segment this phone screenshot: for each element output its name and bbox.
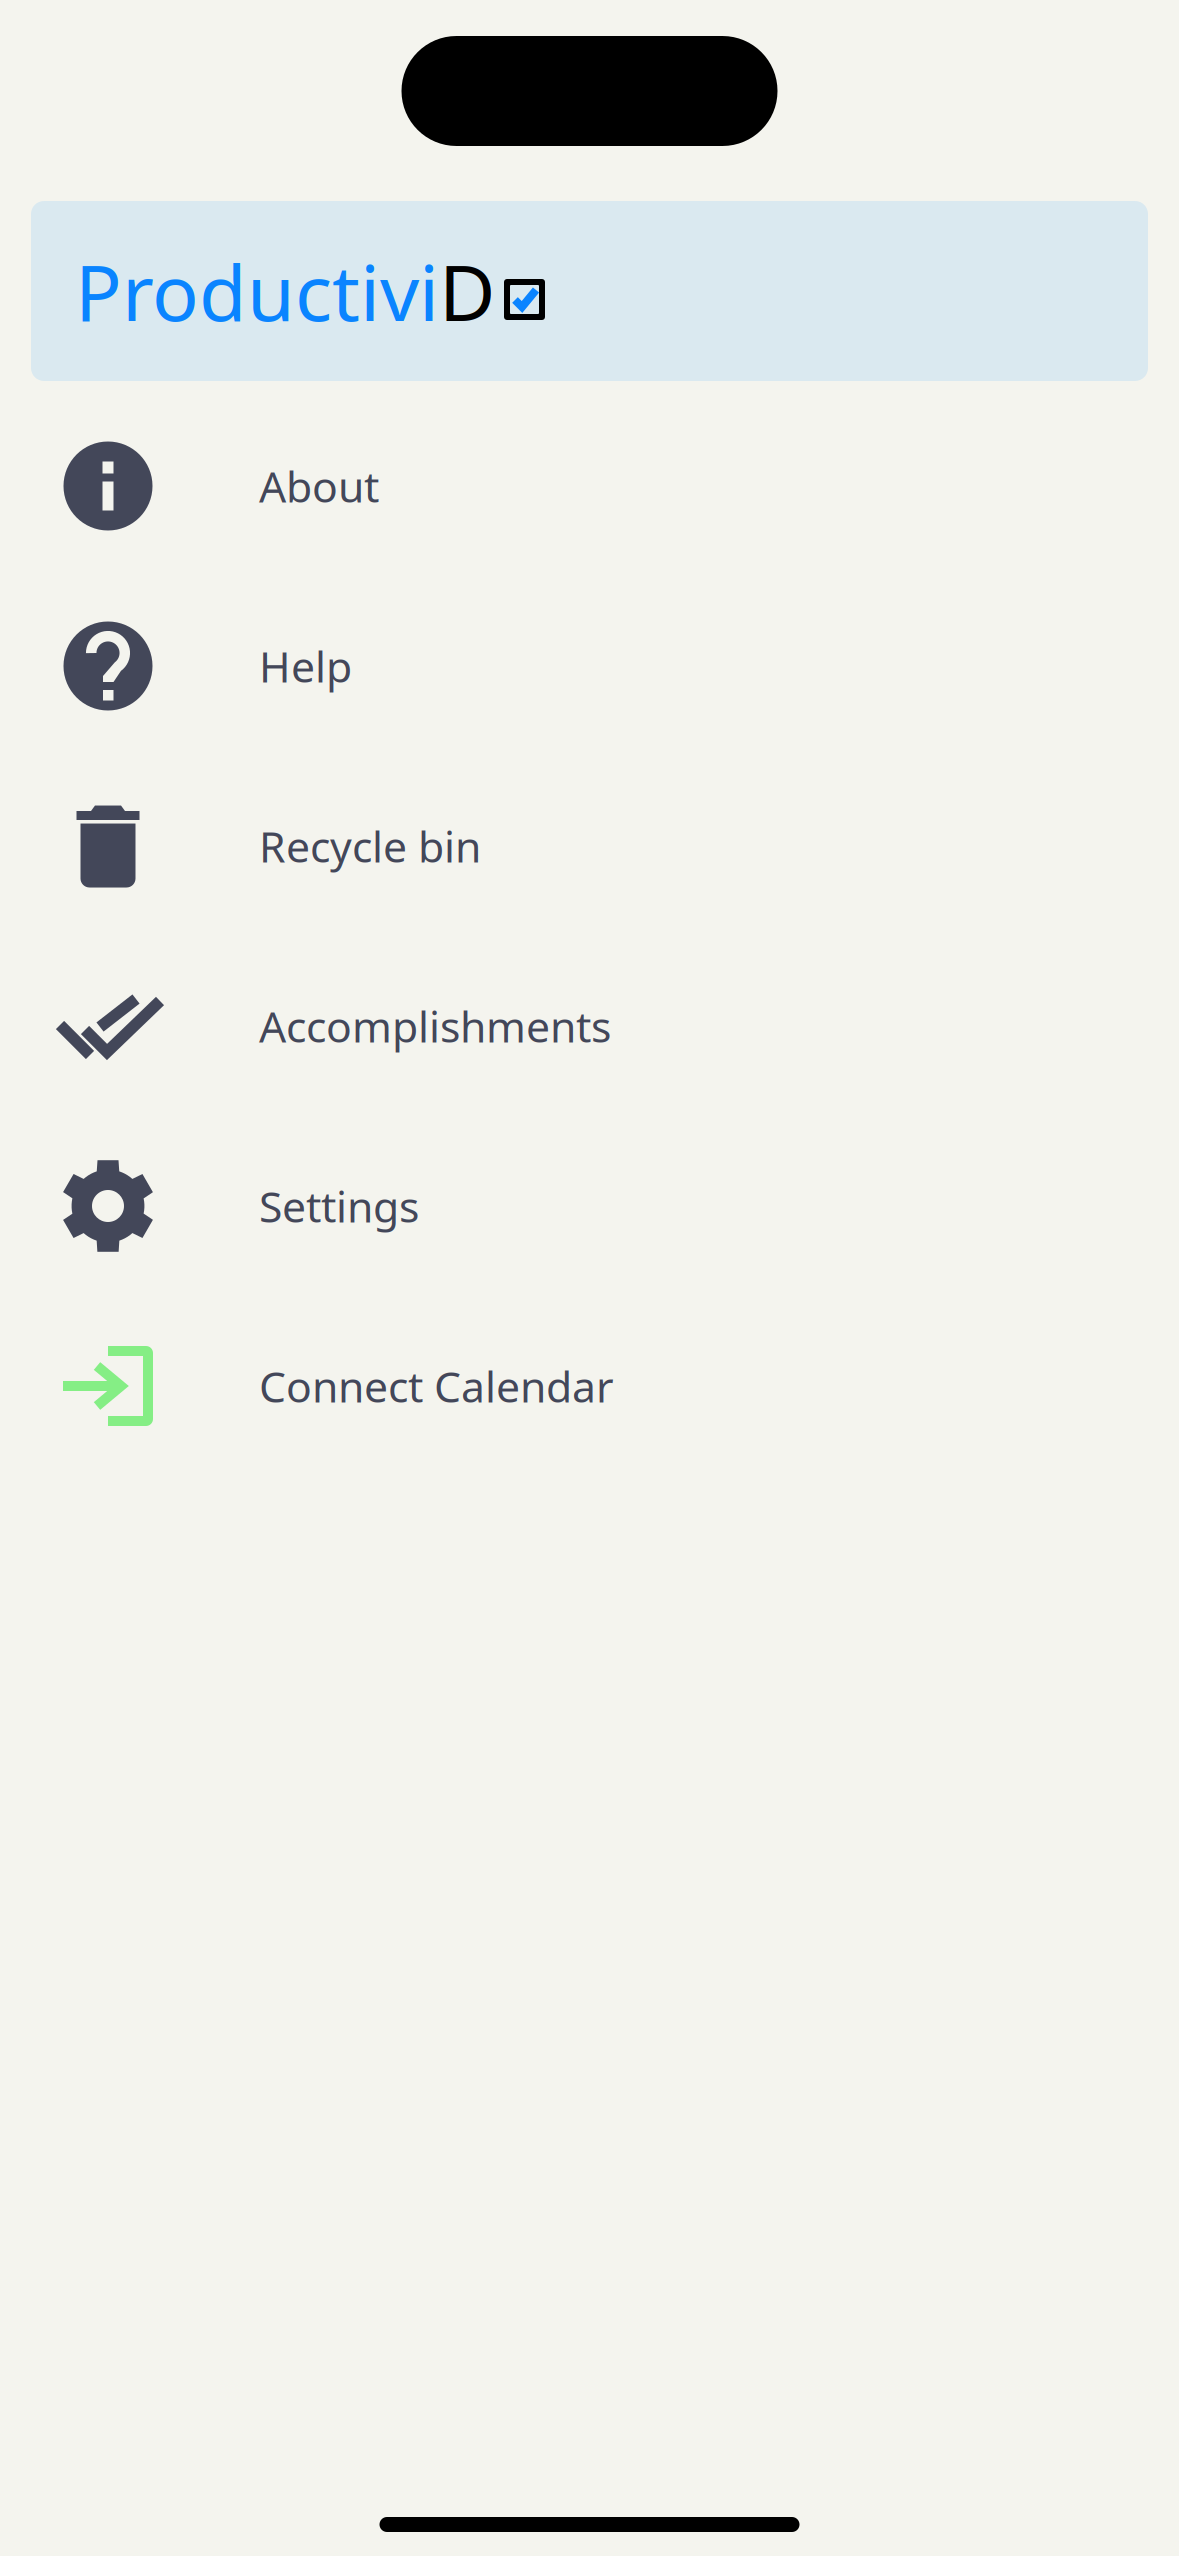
button[interactable]: Connect Calendar (0, 1296, 1179, 1476)
staticText: About (259, 458, 379, 514)
staticText: Connect Calendar (259, 1358, 614, 1414)
staticText: Productivi (75, 240, 439, 342)
button[interactable]: Settings (0, 1116, 1179, 1296)
staticText: D (439, 240, 495, 342)
button[interactable]: Help (0, 576, 1179, 756)
staticText: Accomplishments (259, 998, 611, 1054)
staticText: Help (259, 638, 352, 694)
staticText: Recycle bin (259, 818, 481, 874)
button[interactable]: Recycle bin (0, 756, 1179, 936)
staticText: Settings (259, 1178, 419, 1234)
button[interactable]: Accomplishments (0, 936, 1179, 1116)
button[interactable]: About (0, 396, 1179, 576)
